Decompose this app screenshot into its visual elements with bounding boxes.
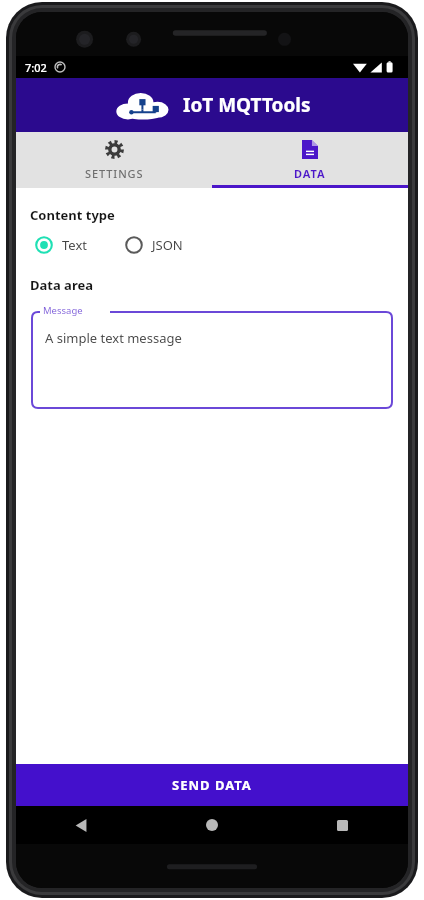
staticText: A simple text message [45, 329, 182, 347]
button[interactable]: SETTINGS [16, 132, 212, 188]
button[interactable]: Recent apps [277, 806, 408, 844]
button[interactable]: Message [32, 305, 392, 408]
staticText: JSON [152, 236, 183, 254]
button[interactable]: Home [146, 806, 277, 844]
staticText: Text [62, 236, 87, 254]
staticText: SEND DATA [172, 776, 252, 794]
staticText: Message [43, 304, 83, 317]
button[interactable]: SEND DATA [16, 764, 408, 806]
staticText: SETTINGS [85, 166, 144, 181]
staticText: Data area [30, 276, 93, 294]
staticText: DATA [294, 166, 326, 181]
button[interactable]: DATA [212, 132, 408, 188]
button[interactable]: Text [35, 236, 87, 254]
button[interactable]: Back [16, 806, 146, 844]
staticText: Content type [30, 206, 115, 224]
staticText: 7:02 [25, 60, 47, 75]
button[interactable]: JSON [125, 236, 183, 254]
staticText: IoT MQTTools [183, 92, 311, 118]
